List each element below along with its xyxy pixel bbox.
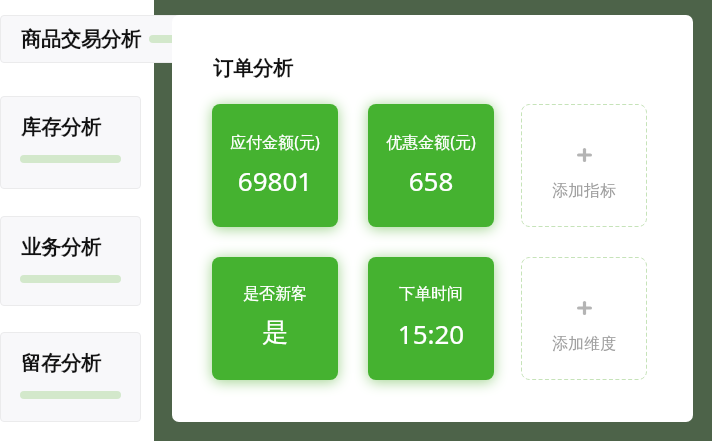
staticText: 下单时间	[368, 284, 494, 304]
staticText: 658	[368, 163, 494, 198]
button[interactable]: 商品交易分析	[0, 15, 182, 63]
button[interactable]: Add dimension	[521, 257, 647, 380]
staticText: 留存分析	[21, 351, 101, 376]
staticText: 添加维度	[521, 334, 647, 354]
staticText: 15:20	[368, 316, 494, 351]
button[interactable]: 应付金额(元)	[212, 104, 338, 227]
staticText: 应付金额(元)	[212, 131, 338, 153]
staticText: 库存分析	[21, 115, 101, 140]
other: Add metric	[577, 148, 592, 162]
button[interactable]: Add metric	[521, 104, 647, 227]
staticText: 优惠金额(元)	[368, 131, 494, 153]
staticText: 添加指标	[521, 181, 647, 201]
button[interactable]: 业务分析	[0, 216, 141, 306]
staticText: 订单分析	[213, 56, 293, 81]
button[interactable]: 下单时间	[368, 257, 494, 380]
button[interactable]: 留存分析	[0, 332, 141, 422]
button[interactable]: 优惠金额(元)	[368, 104, 494, 227]
button[interactable]: 库存分析	[0, 96, 141, 189]
staticText: 69801	[212, 163, 338, 198]
button[interactable]: 是否新客	[212, 257, 338, 380]
staticText: 是	[212, 316, 338, 349]
staticText: 商品交易分析	[21, 27, 141, 52]
other: Add dimension	[577, 301, 592, 315]
staticText: 业务分析	[21, 235, 101, 260]
staticText: 是否新客	[212, 284, 338, 304]
